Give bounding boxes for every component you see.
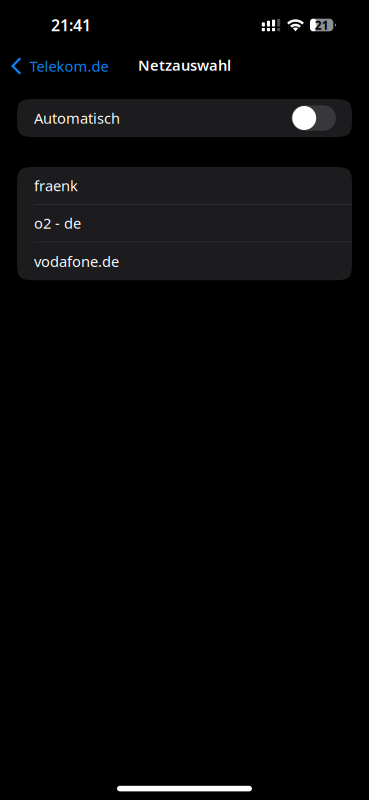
button[interactable]: vodafone.de — [17, 242, 352, 280]
staticText: fraenk — [34, 176, 78, 195]
button[interactable]: Telekom.de — [0, 50, 369, 82]
button[interactable]: Automatisch — [17, 99, 352, 137]
button[interactable]: o2 - de — [17, 205, 352, 242]
staticText: 21:41 — [51, 14, 91, 36]
staticText: o2 - de — [34, 213, 81, 233]
staticText: Netzauswahl — [138, 55, 231, 75]
button[interactable]: fraenk — [17, 167, 352, 205]
staticText: Telekom.de — [29, 56, 108, 76]
staticText: 21 — [315, 17, 329, 33]
staticText: Automatisch — [34, 108, 120, 128]
staticText: vodafone.de — [34, 251, 119, 271]
